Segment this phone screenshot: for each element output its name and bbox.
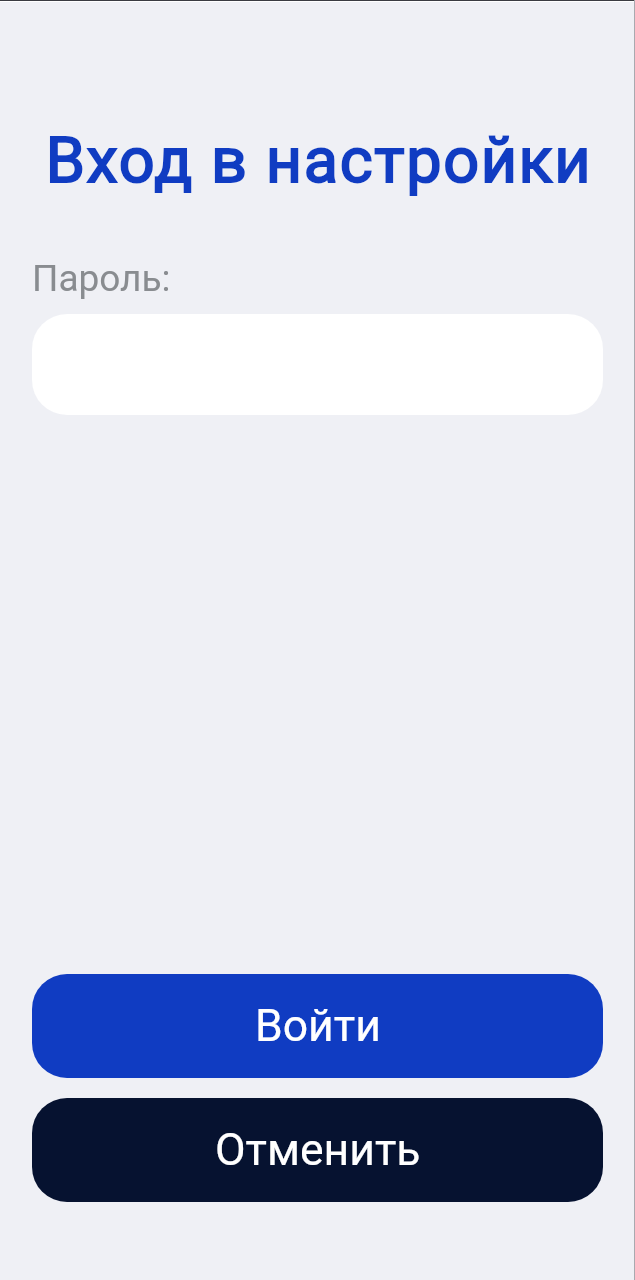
- staticText: Войти: [255, 1000, 381, 1052]
- staticText: Отменить: [215, 1124, 421, 1176]
- staticText: Пароль:: [32, 257, 171, 300]
- button[interactable]: Отменить: [32, 1098, 603, 1202]
- staticText: Вход в настройки: [3, 124, 635, 198]
- button[interactable]: Войти: [32, 974, 603, 1078]
